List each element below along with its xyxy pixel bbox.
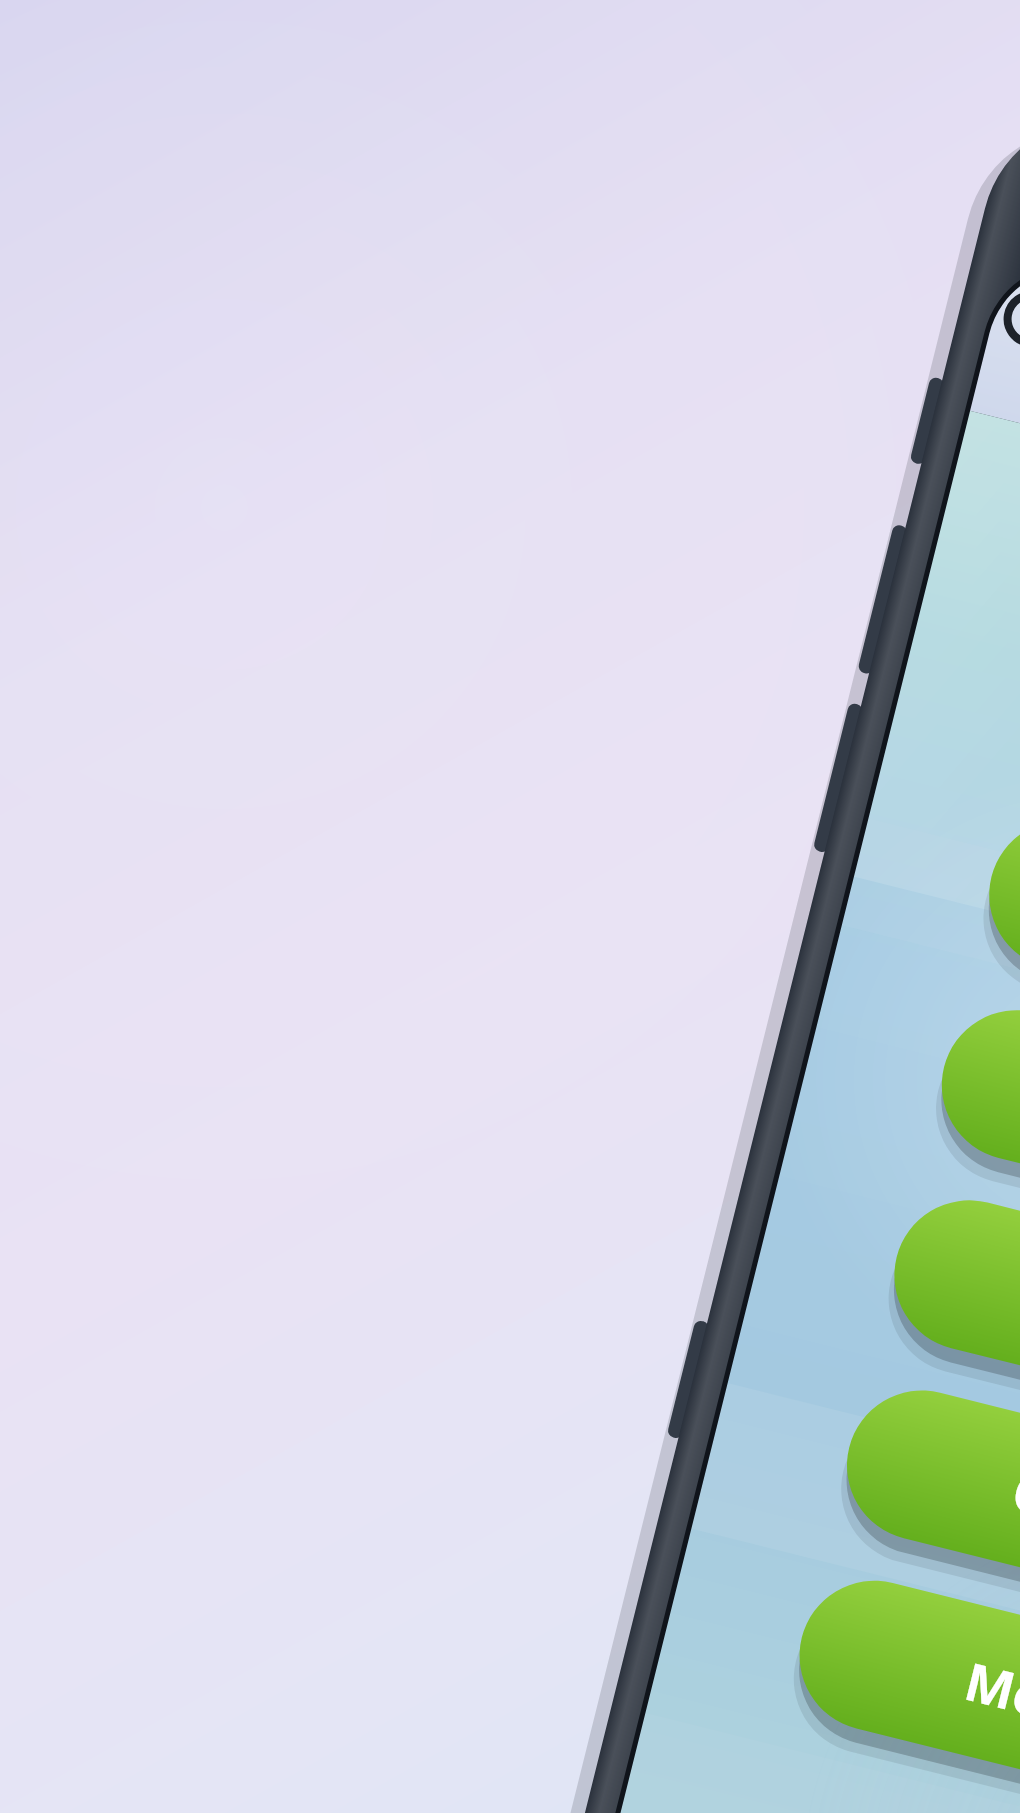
button[interactable]: Phone showing green menu buttons [0, 0, 1020, 1813]
